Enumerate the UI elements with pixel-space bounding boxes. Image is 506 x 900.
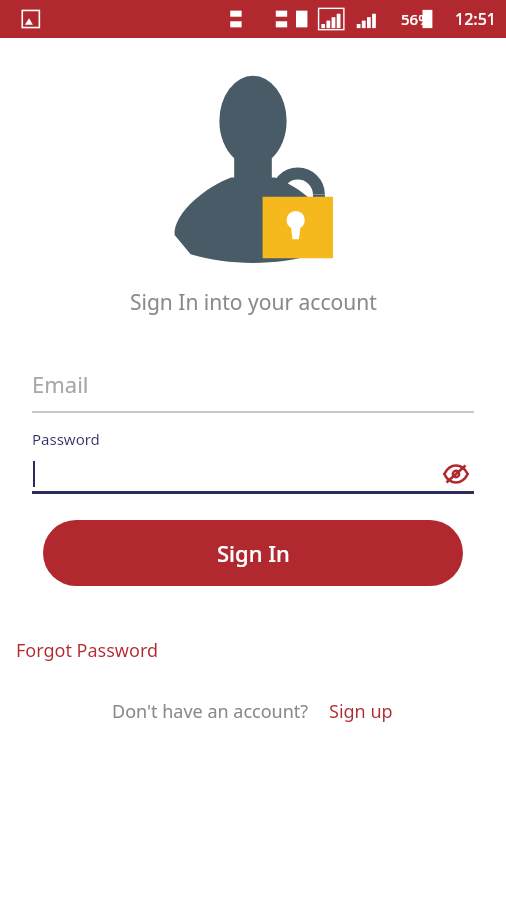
button[interactable]: Show password — [438, 457, 474, 491]
staticText: 56% — [401, 9, 431, 29]
staticText: 12:51 — [455, 8, 496, 30]
button[interactable]: Email — [32, 369, 474, 413]
staticText: Sign In — [217, 538, 290, 568]
staticText: Don't have an account? — [112, 699, 309, 724]
button[interactable]: Sign up — [327, 695, 395, 728]
staticText: Password — [32, 429, 100, 449]
staticText: Forgot Password — [16, 638, 159, 663]
staticText: Email — [32, 369, 89, 399]
staticText: Sign In into your account — [130, 288, 377, 317]
button[interactable]: Password — [32, 429, 474, 494]
staticText: Sign up — [329, 699, 393, 724]
button[interactable]: Sign In — [43, 520, 463, 586]
button[interactable]: Forgot Password — [14, 634, 161, 667]
